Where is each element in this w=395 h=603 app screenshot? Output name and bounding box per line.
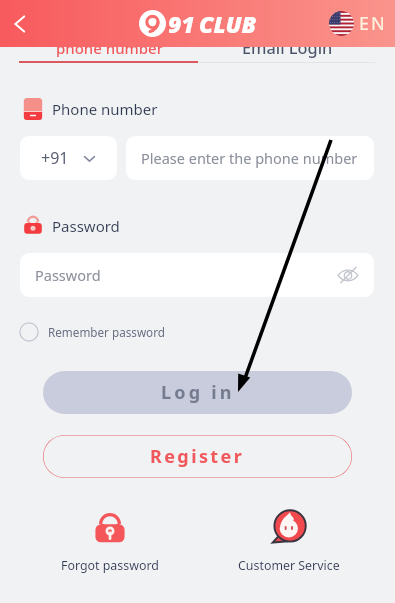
staticText: CLUB bbox=[199, 8, 257, 39]
staticText: Password bbox=[35, 265, 101, 285]
button[interactable]: Show password bbox=[334, 261, 362, 289]
button[interactable]: Back bbox=[0, 4, 40, 44]
staticText: Register bbox=[150, 444, 245, 469]
button[interactable]: Please enter the phone number bbox=[126, 136, 374, 180]
button[interactable]: Register bbox=[43, 435, 352, 478]
staticText: Remember password bbox=[48, 324, 165, 340]
staticText: Log in bbox=[161, 380, 235, 405]
button[interactable]: Password bbox=[20, 253, 374, 297]
staticText: Please enter the phone number bbox=[141, 148, 358, 168]
button[interactable]: Customer Service bbox=[221, 509, 357, 574]
staticText: Forgot password bbox=[61, 557, 159, 574]
button[interactable]: +91 bbox=[20, 136, 117, 180]
staticText: +91 bbox=[41, 147, 69, 169]
button[interactable]: EN bbox=[329, 11, 387, 36]
staticText: phone number bbox=[56, 38, 164, 58]
staticText: Email Login bbox=[242, 37, 333, 59]
button[interactable]: Log in bbox=[43, 371, 352, 414]
button[interactable]: Remember password bbox=[19, 320, 165, 344]
staticText: Customer Service bbox=[238, 557, 340, 574]
button[interactable]: Email Login bbox=[197, 35, 377, 61]
button[interactable]: phone number bbox=[20, 35, 200, 61]
staticText: EN bbox=[359, 11, 387, 36]
staticText: Password bbox=[52, 216, 120, 236]
staticText: Phone number bbox=[52, 99, 158, 119]
staticText: 91 bbox=[168, 8, 195, 39]
button[interactable]: Forgot password bbox=[42, 509, 178, 574]
